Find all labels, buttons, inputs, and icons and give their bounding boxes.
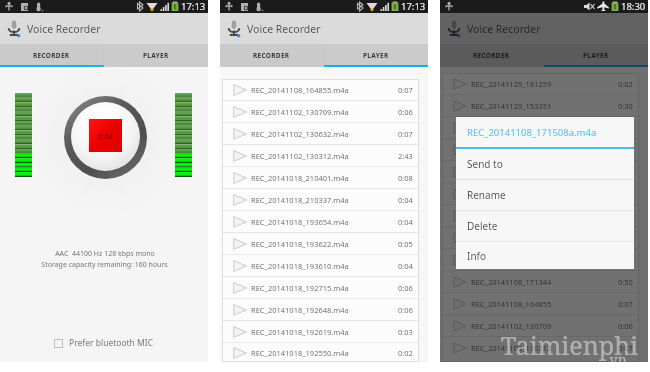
- button[interactable]: REC_20141108_164855.m4a: [222, 79, 419, 100]
- staticText: REC_20141108_171410: [471, 167, 618, 177]
- staticText: REC_20141108_164855.m4a: [251, 85, 398, 95]
- staticText: REC_20141108_171508a.m4a: [467, 126, 597, 139]
- staticText: REC_20141108_171442: [471, 145, 618, 155]
- button[interactable]: REC_20141018_193622.m4a: [222, 233, 419, 254]
- button[interactable]: REC_20141102_130312: [442, 337, 639, 358]
- button[interactable]: REC_20141018_192550.m4a: [222, 343, 419, 362]
- staticText: Rename: [467, 188, 506, 202]
- button[interactable]: Delete: [456, 211, 634, 241]
- button[interactable]: Info: [456, 242, 634, 269]
- staticText: 0:06: [398, 305, 413, 315]
- staticText: REC_20141108_171508a: [471, 123, 618, 133]
- button[interactable]: REC_20141018_193654.m4a: [222, 211, 419, 232]
- staticText: Storage capacity remaining: 160 hours: [41, 260, 168, 270]
- button[interactable]: PLAYER: [104, 44, 208, 67]
- button[interactable]: REC_20141102_130312.m4a: [222, 145, 419, 166]
- staticText: 0:04: [398, 195, 413, 205]
- staticText: AAC 44100 Hz 128 kbps mono: [55, 249, 155, 259]
- staticText: REC_20141129_181259: [471, 79, 618, 89]
- staticText: 0:07: [618, 343, 633, 353]
- staticText: REC_20141102_130632.m4a: [251, 129, 398, 139]
- button[interactable]: REC_20141018_210401.m4a: [222, 167, 419, 188]
- staticText: REC_20141108_171348: [471, 255, 618, 265]
- staticText: Info: [467, 249, 487, 263]
- staticText: Prefer bluetooth MIC: [69, 337, 154, 349]
- staticText: REC_20141018_210401.m4a: [251, 173, 398, 183]
- staticText: REC_20141018_193654.m4a: [251, 217, 398, 227]
- button[interactable]: Prefer bluetooth MIC: [54, 337, 154, 349]
- staticText: 0:08: [398, 173, 413, 183]
- staticText: PLAYER: [143, 51, 169, 60]
- button[interactable]: REC_20141108_171410: [442, 161, 639, 182]
- staticText: PLAYER: [363, 51, 389, 60]
- button[interactable]: PLAYER: [544, 44, 648, 67]
- button[interactable]: RECORDER: [0, 44, 103, 67]
- button[interactable]: Rename: [456, 180, 634, 210]
- button[interactable]: REC_20141108_171508a: [442, 117, 639, 138]
- staticText: REC_20141018_210337.m4a: [251, 195, 398, 205]
- button[interactable]: REC_20141108_171442: [442, 139, 639, 160]
- button[interactable]: REC_20141108_171401: [442, 183, 639, 204]
- button[interactable]: REC_20141018_192619.m4a: [222, 321, 419, 342]
- staticText: 0:50: [618, 277, 633, 287]
- button[interactable]: REC_20141108_164855: [442, 293, 639, 314]
- button[interactable]: REC_20141129_153351: [442, 95, 639, 116]
- button[interactable]: REC_20141018_192648.m4a: [222, 299, 419, 320]
- staticText: 0:02: [618, 79, 633, 89]
- staticText: REC_20141018_192550.m4a: [251, 348, 398, 358]
- staticText: REC_20141018_192619.m4a: [251, 327, 398, 337]
- button[interactable]: REC_20141018_210337.m4a: [222, 189, 419, 210]
- button[interactable]: REC_20141102_130632.m4a: [222, 123, 419, 144]
- staticText: REC_20141129_153351: [471, 101, 618, 111]
- staticText: REC_20141018_192715.m4a: [251, 283, 398, 293]
- staticText: REC_20141108_164855: [471, 299, 618, 309]
- button[interactable]: RECORDER: [220, 44, 323, 67]
- staticText: Delete: [467, 219, 498, 233]
- staticText: 0:04: [398, 261, 413, 271]
- button[interactable]: REC_20141108_171348: [442, 249, 639, 270]
- button[interactable]: REC_20141018_192715.m4a: [222, 277, 419, 298]
- staticText: RECORDER: [253, 51, 290, 60]
- button[interactable]: REC_20141108_171355: [442, 205, 639, 226]
- staticText: 18:30: [621, 0, 646, 13]
- button[interactable]: REC_20141108_171350: [442, 227, 639, 248]
- staticText: 2:43: [398, 151, 413, 161]
- button[interactable]: RECORDER: [440, 44, 543, 67]
- staticText: 17:13: [181, 0, 206, 13]
- staticText: 0:06: [398, 283, 413, 293]
- staticText: 0:04: [98, 131, 113, 141]
- staticText: REC_20141108_171344: [471, 277, 618, 287]
- button[interactable]: REC_20141108_171344: [442, 271, 639, 292]
- staticText: REC_20141102_130709.m4a: [251, 107, 398, 117]
- staticText: 0:03: [618, 233, 633, 243]
- button[interactable]: REC_20141102_130709: [442, 315, 639, 336]
- staticText: Send to: [467, 157, 503, 171]
- staticText: 0:03: [398, 327, 413, 337]
- staticText: 0:09: [618, 145, 633, 155]
- button[interactable]: Record: [64, 96, 147, 179]
- staticText: RECORDER: [473, 51, 510, 60]
- button[interactable]: PLAYER: [324, 44, 428, 67]
- staticText: REC_20141108_171350: [471, 233, 618, 243]
- staticText: Voice Recorder: [27, 22, 101, 36]
- staticText: .vn: [607, 350, 627, 369]
- button[interactable]: Send to: [456, 149, 634, 179]
- staticText: 0:02: [398, 348, 413, 358]
- staticText: 0:05: [398, 239, 413, 249]
- button[interactable]: REC_20141129_181259: [442, 73, 639, 94]
- button[interactable]: REC_20141018_193610.m4a: [222, 255, 419, 276]
- staticText: PLAYER: [583, 51, 609, 60]
- staticText: REC_20141102_130312: [471, 343, 618, 353]
- button[interactable]: REC_20141102_130709.m4a: [222, 101, 419, 122]
- staticText: 0:07: [398, 85, 413, 95]
- staticText: 0:07: [618, 299, 633, 309]
- staticText: REC_20141102_130709: [471, 321, 618, 331]
- staticText: RECORDER: [33, 51, 70, 60]
- staticText: 17:13: [401, 0, 426, 13]
